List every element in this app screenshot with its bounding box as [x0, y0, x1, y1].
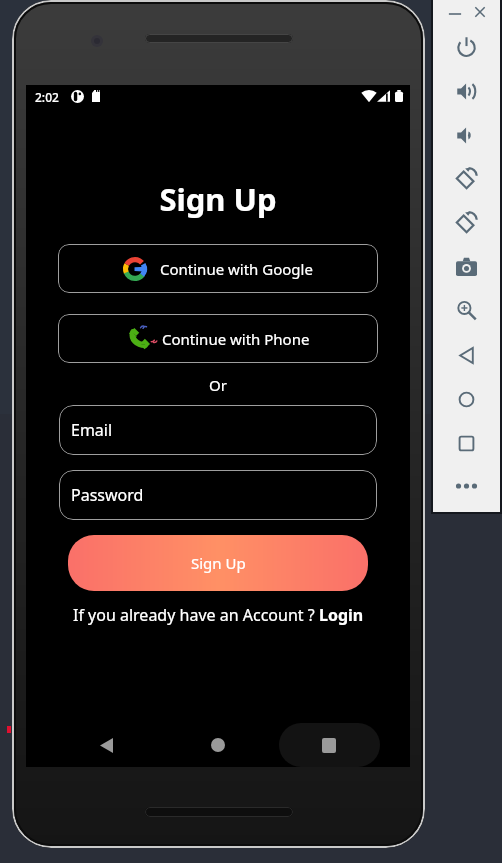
button[interactable]: If you already have an Account ?: [26, 604, 410, 626]
button[interactable]: Power: [454, 34, 478, 58]
button[interactable]: Zoom: [454, 298, 478, 322]
button[interactable]: Email: [59, 405, 377, 455]
staticText: Continue with Google: [160, 259, 313, 279]
button[interactable]: Recent apps: [301, 719, 357, 767]
button[interactable]: Home: [190, 719, 246, 767]
staticText: Sign Up: [191, 553, 246, 573]
staticText: Sign Up: [26, 178, 410, 220]
staticText: Continue with Phone: [162, 329, 310, 349]
button[interactable]: Password: [59, 470, 377, 520]
button[interactable]: Home: [454, 387, 478, 411]
button[interactable]: Minimise: [446, 5, 464, 23]
staticText: Password: [71, 484, 144, 506]
button[interactable]: Rotate right: [454, 210, 478, 234]
button[interactable]: Overview: [454, 431, 478, 455]
staticText: Login: [319, 604, 364, 626]
button[interactable]: More: [454, 474, 478, 498]
staticText: If you already have an Account ?: [73, 604, 319, 626]
button[interactable]: Rotate left: [454, 166, 478, 190]
button[interactable]: Volume down: [454, 123, 478, 147]
button[interactable]: Volume up: [454, 79, 478, 103]
staticText: Email: [71, 419, 113, 441]
button[interactable]: Continue with Google: [58, 244, 378, 293]
button[interactable]: Close: [471, 3, 489, 21]
button[interactable]: Continue with Phone: [58, 314, 378, 363]
staticText: Or: [26, 375, 410, 395]
button[interactable]: Sign Up: [68, 535, 368, 591]
button[interactable]: Back: [454, 343, 478, 367]
staticText: 2:02: [35, 89, 59, 105]
button[interactable]: Take screenshot: [454, 254, 478, 278]
button[interactable]: Back: [78, 719, 134, 767]
